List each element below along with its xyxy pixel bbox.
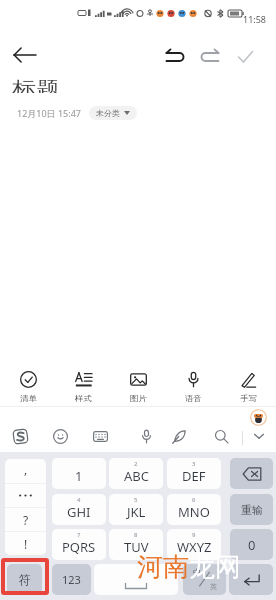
staticText: ABC bbox=[124, 467, 149, 485]
staticText: 11:58 bbox=[243, 13, 267, 25]
staticText: JKL bbox=[127, 503, 146, 521]
button[interactable]: Redo bbox=[197, 41, 223, 73]
button[interactable]: Undo bbox=[162, 41, 188, 73]
staticText: 符 bbox=[19, 572, 31, 587]
button[interactable] bbox=[5, 484, 46, 507]
staticText: 标题 bbox=[12, 76, 60, 93]
staticText: 12月10日 15:47 bbox=[17, 107, 81, 119]
staticText: 河南 bbox=[137, 551, 189, 584]
staticText: 龙网 bbox=[189, 551, 241, 584]
staticText: 2 bbox=[134, 460, 138, 468]
staticText: 英 bbox=[210, 582, 217, 591]
button[interactable]: 清单 bbox=[0, 365, 56, 407]
button[interactable]: 5 bbox=[109, 494, 163, 525]
staticText: 123 bbox=[62, 572, 81, 587]
staticText: 清单 bbox=[20, 394, 37, 403]
button[interactable]: Keyboard layout bbox=[84, 424, 116, 448]
button[interactable]: Hide keyboard bbox=[243, 424, 275, 448]
button[interactable]: 0 bbox=[230, 529, 273, 560]
button[interactable]: Backspace bbox=[230, 458, 273, 489]
staticText: 3 bbox=[192, 460, 196, 468]
button[interactable]: 1 bbox=[52, 458, 106, 489]
staticText: TUV bbox=[124, 538, 149, 556]
button[interactable]: 样式 bbox=[56, 365, 111, 407]
staticText: 重输 bbox=[241, 503, 263, 517]
button[interactable]: Search bbox=[205, 424, 237, 448]
button[interactable]: 重输 bbox=[230, 494, 273, 525]
staticText: WXYZ bbox=[177, 538, 212, 556]
staticText: 语音 bbox=[185, 394, 202, 403]
button[interactable]: Space bbox=[94, 564, 178, 595]
staticText: 图片 bbox=[130, 394, 147, 403]
staticText: ! bbox=[24, 536, 28, 552]
button[interactable]: 7 bbox=[52, 529, 106, 560]
button[interactable]: 手写 bbox=[221, 365, 276, 407]
button[interactable]: ! bbox=[5, 532, 46, 555]
staticText: 样式 bbox=[75, 394, 92, 403]
button[interactable]: Back bbox=[12, 40, 42, 70]
button[interactable]: 123 bbox=[52, 564, 91, 595]
button[interactable]: ? bbox=[5, 508, 46, 531]
staticText: PQRS bbox=[62, 538, 96, 556]
button[interactable]: 未分类 bbox=[89, 106, 137, 120]
button[interactable]: Enter bbox=[229, 564, 273, 595]
staticText: 4 bbox=[77, 496, 81, 504]
button[interactable]: 语音 bbox=[166, 365, 221, 407]
staticText: ? bbox=[23, 512, 29, 528]
button[interactable]: Save bbox=[232, 41, 258, 73]
button[interactable]: 6 bbox=[167, 494, 221, 525]
button[interactable]: 2 bbox=[109, 458, 163, 489]
staticText: 8 bbox=[134, 531, 138, 539]
button[interactable]: Handwriting bbox=[163, 424, 195, 448]
button[interactable]: 9 bbox=[167, 529, 221, 560]
button[interactable]: , bbox=[5, 459, 46, 483]
button[interactable]: 图片 bbox=[111, 365, 166, 407]
staticText: 7 bbox=[77, 531, 81, 539]
button[interactable]: Switch language bbox=[183, 564, 226, 595]
button[interactable]: Emoji bbox=[44, 424, 76, 448]
staticText: 1 bbox=[75, 467, 83, 485]
staticText: DEF bbox=[182, 467, 206, 485]
button[interactable]: 8 bbox=[109, 529, 163, 560]
staticText: , bbox=[24, 461, 28, 477]
button[interactable]: Sogou bbox=[4, 424, 36, 448]
button[interactable]: 符 bbox=[7, 564, 42, 595]
staticText: 5 bbox=[134, 496, 138, 504]
staticText: 中 bbox=[193, 567, 201, 577]
staticText: 9 bbox=[192, 531, 196, 539]
button[interactable]: 4 bbox=[52, 494, 106, 525]
staticText: MNO bbox=[178, 503, 210, 521]
staticText: 手写 bbox=[240, 394, 257, 403]
staticText: 6 bbox=[192, 496, 196, 504]
staticText: 未分类 bbox=[96, 108, 120, 118]
button[interactable]: 3 bbox=[167, 458, 221, 489]
staticText: 0 bbox=[248, 536, 256, 554]
staticText: GHI bbox=[67, 503, 91, 521]
button[interactable]: Voice input bbox=[130, 424, 162, 448]
